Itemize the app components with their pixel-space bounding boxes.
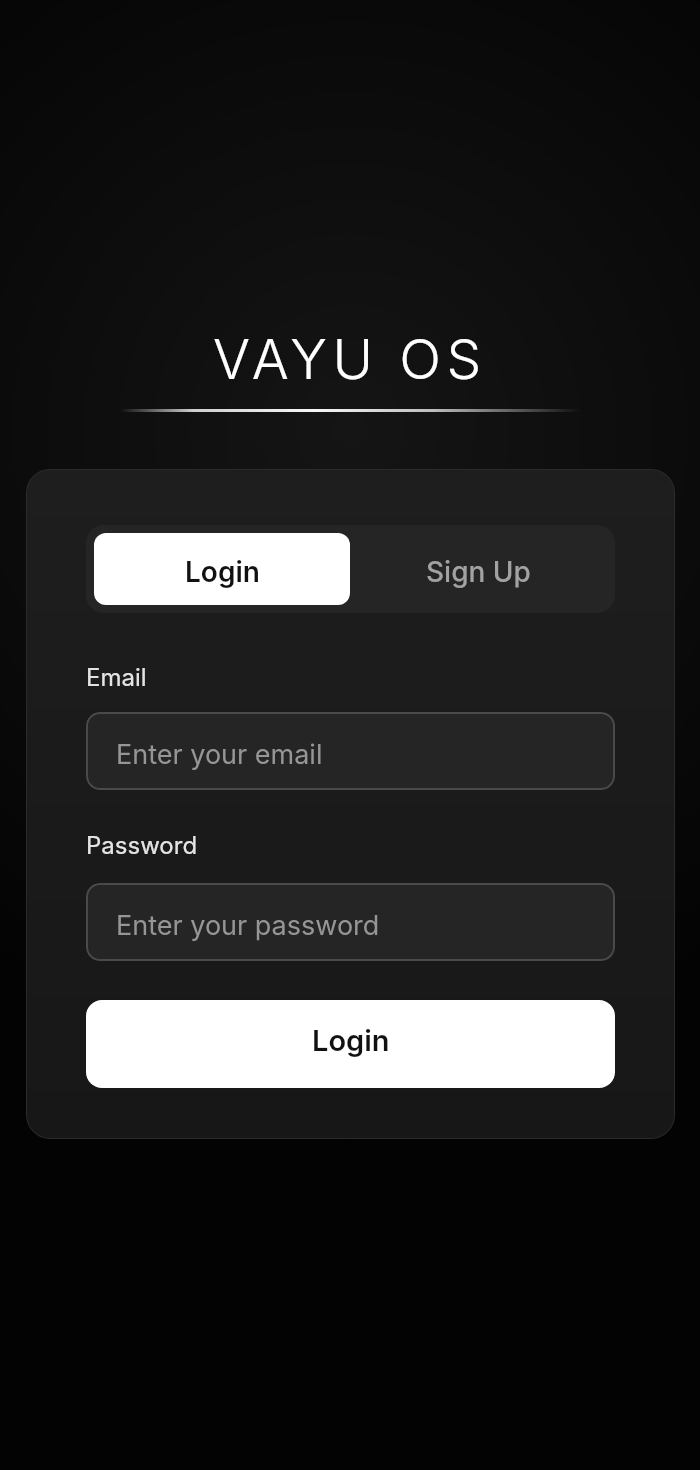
button[interactable]: Login [86, 1000, 615, 1088]
staticText: Password [86, 831, 198, 860]
button[interactable]: Login [94, 533, 350, 605]
button[interactable]: Sign Up [350, 533, 607, 605]
staticText: Login [185, 555, 260, 589]
staticText: Enter your email [116, 738, 323, 771]
staticText: Login [312, 1023, 390, 1058]
staticText: Enter your password [116, 909, 380, 942]
button[interactable]: Enter your email [86, 712, 615, 790]
staticText: VAYU OS [213, 326, 487, 393]
staticText: Sign Up [426, 555, 531, 589]
button[interactable]: Enter your password [86, 883, 615, 961]
staticText: Email [86, 663, 147, 692]
